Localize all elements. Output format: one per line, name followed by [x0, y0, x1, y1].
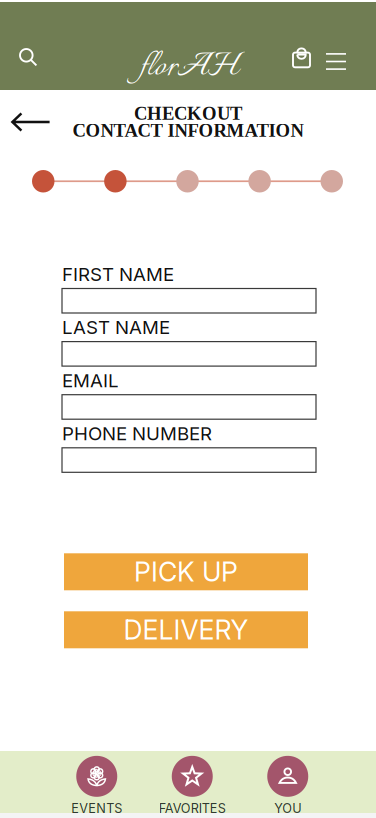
- staticText: PICK UP: [134, 556, 238, 588]
- button[interactable]: Back: [0, 105, 62, 139]
- staticText: PHONE NUMBER: [62, 422, 212, 445]
- staticText: FAVORITES: [159, 801, 226, 816]
- button[interactable]: Menu: [326, 2, 346, 90]
- button[interactable]: Cart: [292, 2, 311, 90]
- button[interactable]: DELIVERY: [64, 611, 308, 648]
- staticText: YOU: [274, 801, 301, 816]
- staticText: EVENTS: [71, 801, 122, 816]
- staticText: CONTACT INFORMATION: [72, 120, 303, 141]
- button[interactable]: PICK UP: [64, 553, 308, 590]
- button[interactable]: Search: [19, 2, 38, 90]
- button[interactable]: EVENTS: [49, 751, 144, 813]
- staticText: EMAIL: [62, 369, 119, 392]
- button[interactable]: FAVORITES: [144, 751, 240, 813]
- staticText: CHECKOUT: [134, 103, 242, 124]
- staticText: FIRST NAME: [62, 263, 174, 285]
- staticText: DELIVERY: [123, 614, 248, 646]
- button[interactable]: YOU: [240, 751, 335, 813]
- staticText: florAH: [139, 42, 239, 92]
- staticText: LAST NAME: [62, 316, 170, 339]
